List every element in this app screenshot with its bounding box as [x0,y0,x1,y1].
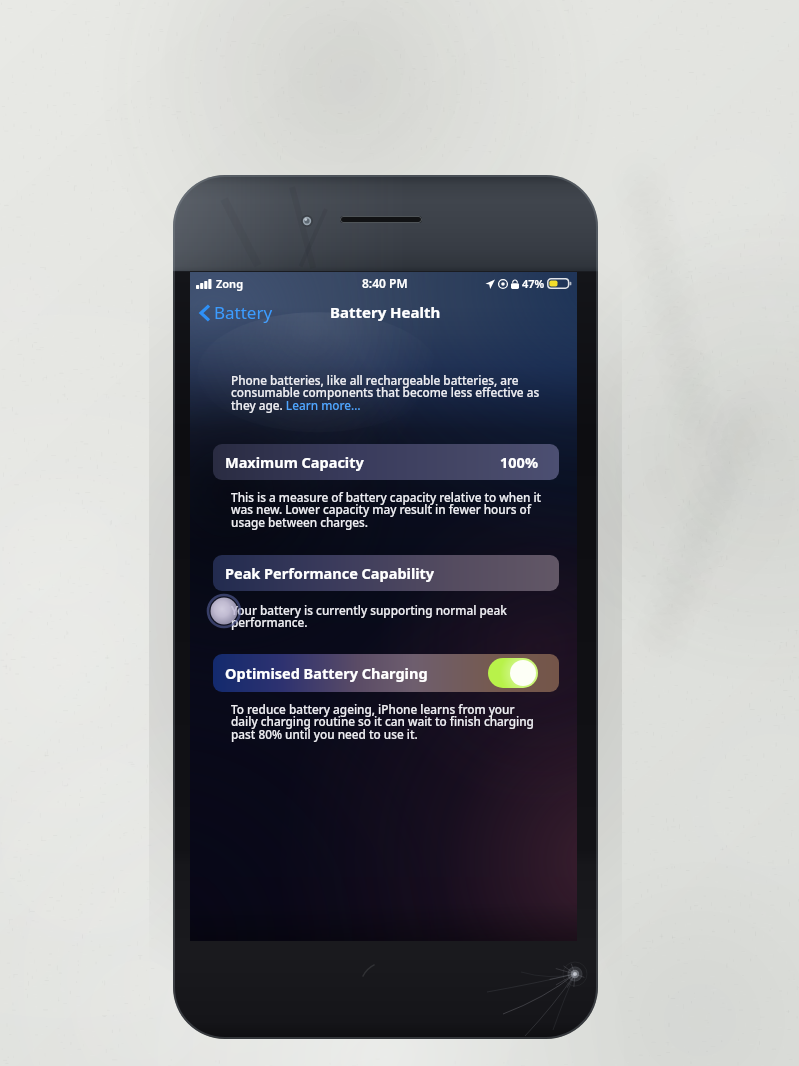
staticText: Battery [214,301,273,324]
button[interactable]: Optimised Battery Charging, on [488,658,538,688]
staticText: To reduce battery ageing, iPhone learns … [231,701,534,743]
button[interactable]: Peak Performance Capability [213,555,559,591]
staticText: 47% [522,276,545,291]
button[interactable]: Optimised Battery Charging [213,654,559,692]
staticText: Battery Health [330,302,441,322]
staticText: Maximum Capacity [225,452,364,472]
staticText: Your battery is currently supporting nor… [231,602,507,631]
button[interactable]: Maximum Capacity [213,444,559,480]
staticText: Zong [216,276,244,291]
staticText: 8:40 PM [362,275,408,291]
staticText: 100% [500,452,538,472]
staticText: Optimised Battery Charging [225,663,428,683]
staticText: Phone batteries, like all rechargeable b… [231,372,540,414]
staticText: This is a measure of battery capacity re… [231,489,542,531]
button[interactable]: Battery [190,295,283,330]
staticText: Peak Performance Capability [225,563,435,583]
